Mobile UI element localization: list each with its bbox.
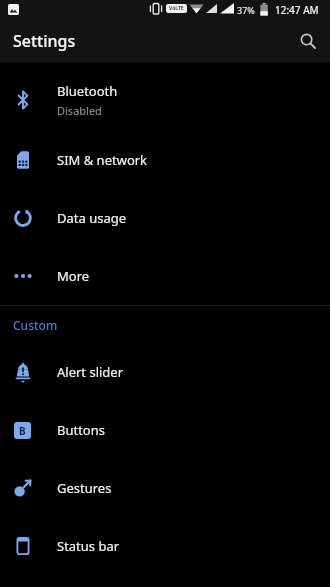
staticText: SIM & network	[57, 151, 148, 169]
staticText: Bluetooth	[57, 82, 118, 100]
staticText: More	[57, 267, 90, 285]
staticText: Data usage	[57, 209, 127, 227]
staticText: Disabled	[57, 103, 102, 118]
button[interactable]: Gestures	[0, 459, 330, 517]
button[interactable]: B	[0, 401, 330, 459]
staticText: Buttons	[57, 421, 105, 439]
button[interactable]: Data usage	[0, 189, 330, 247]
button[interactable]	[290, 23, 326, 59]
button[interactable]: Status bar	[0, 517, 330, 575]
button[interactable]: SIM & network	[0, 131, 330, 189]
staticText: B	[19, 424, 26, 438]
staticText: Alert slider	[57, 363, 124, 381]
staticText: 12:47 AM	[275, 3, 319, 17]
staticText: VoLTE	[169, 5, 184, 12]
staticText: Custom	[13, 317, 58, 333]
staticText: 37%	[237, 4, 255, 16]
staticText: Status bar	[57, 537, 120, 555]
staticText: Settings	[13, 30, 76, 52]
button[interactable]: Alert slider	[0, 343, 330, 401]
button[interactable]: Bluetooth	[0, 68, 330, 131]
button[interactable]: More	[0, 247, 330, 305]
staticText: Gestures	[57, 479, 112, 497]
